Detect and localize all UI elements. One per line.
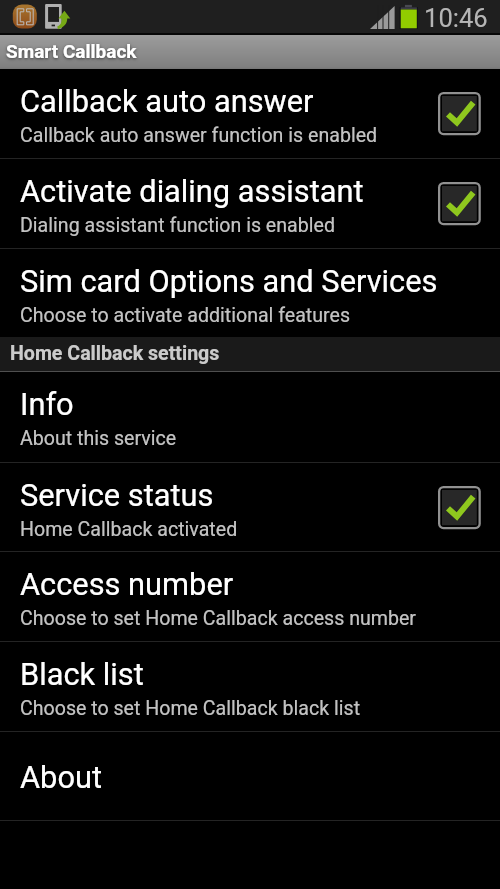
button[interactable]: Toggle Service status (438, 486, 481, 529)
staticText: Service status (20, 477, 214, 513)
button[interactable]: Info (0, 372, 500, 463)
button[interactable]: Callback auto answer (0, 69, 500, 159)
button[interactable]: About (0, 732, 500, 821)
staticText: Black list (20, 656, 144, 692)
staticText: Access number (20, 566, 234, 602)
staticText: About this service (20, 427, 177, 450)
staticText: Callback auto answer function is enabled (20, 124, 378, 147)
staticText: Choose to set Home Callback access numbe… (20, 607, 416, 630)
staticText: Smart Callback (6, 40, 137, 62)
button[interactable]: Activate dialing assistant (0, 159, 500, 249)
staticText: Home Callback settings (10, 342, 220, 365)
button[interactable]: Access number (0, 552, 500, 642)
button[interactable]: Toggle Activate dialing assistant (438, 182, 481, 225)
staticText: Callback auto answer (20, 83, 314, 119)
staticText: Choose to activate additional features (20, 304, 351, 327)
button[interactable]: Toggle Callback auto answer (438, 92, 481, 135)
button[interactable]: Sim card Options and Services (0, 249, 500, 337)
staticText: 10:46 (424, 3, 488, 33)
button[interactable]: Service status (0, 463, 500, 552)
staticText: Home Callback activated (20, 518, 238, 541)
staticText: About (20, 759, 102, 795)
staticText: Choose to set Home Callback black list (20, 697, 361, 720)
staticText: Info (20, 386, 74, 422)
button[interactable]: Black list (0, 642, 500, 732)
staticText: Sim card Options and Services (20, 263, 438, 299)
staticText: Activate dialing assistant (20, 173, 364, 209)
staticText: Dialing assistant function is enabled (20, 214, 335, 237)
